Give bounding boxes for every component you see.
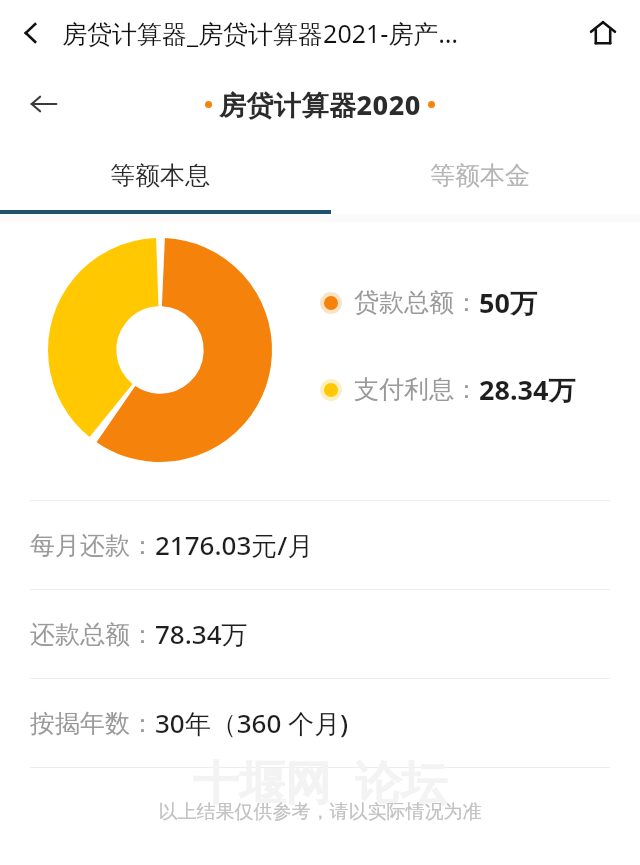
button[interactable]: 还款总额：: [0, 590, 640, 678]
staticText: 30年（360 个月): [155, 705, 349, 741]
staticText: 等额本息: [110, 160, 210, 191]
staticText: 2176.03元/月: [155, 527, 314, 563]
staticText: 每月还款：: [30, 530, 155, 561]
button[interactable]: 等额本息: [0, 142, 320, 208]
staticText: 十堰网 论坛: [193, 750, 447, 813]
button[interactable]: 每月还款：: [0, 501, 640, 589]
button[interactable]: Home: [566, 0, 640, 66]
staticText: 等额本金: [430, 160, 530, 191]
staticText: 房贷计算器2020: [219, 86, 421, 123]
button[interactable]: Back: [14, 74, 74, 134]
staticText: 贷款总额：: [354, 287, 479, 318]
staticText: 还款总额：: [30, 619, 155, 650]
staticText: 28.34万: [479, 371, 576, 408]
staticText: 支付利息：: [354, 374, 479, 405]
button[interactable]: 等额本金: [320, 142, 640, 208]
button[interactable]: Back: [0, 0, 62, 66]
staticText: 按揭年数：: [30, 708, 155, 739]
staticText: 78.34万: [155, 616, 248, 652]
staticText: 以上结果仅供参考，请以实际情况为准: [0, 800, 640, 824]
staticText: 50万: [479, 284, 537, 321]
staticText: 房贷计算器_房贷计算器2021-房产…: [62, 16, 566, 50]
button[interactable]: 按揭年数：: [0, 679, 640, 767]
